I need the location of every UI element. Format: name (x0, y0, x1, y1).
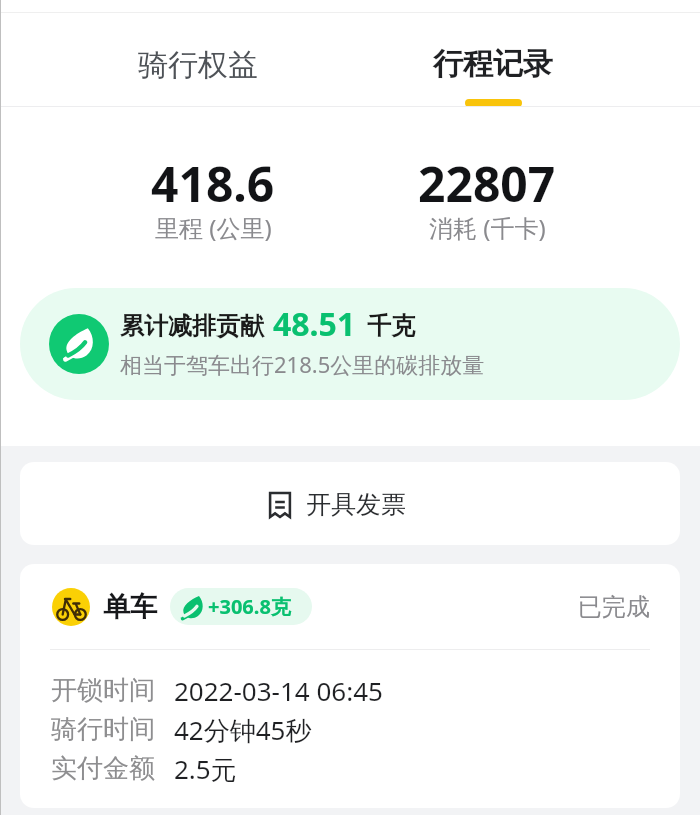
staticText: 单车 (103, 590, 157, 624)
staticText: 行程记录 (433, 45, 553, 83)
button[interactable]: 418.6 (76, 151, 350, 249)
staticText: 累计减排贡献 (120, 311, 264, 341)
staticText: 骑行时间 (51, 713, 155, 746)
button[interactable]: 行程记录 (345, 0, 640, 107)
staticText: 消耗 (千卡) (429, 211, 546, 244)
button[interactable]: 骑行权益 (50, 0, 345, 107)
staticText: 已完成 (578, 592, 650, 622)
staticText: 22807 (418, 151, 556, 216)
staticText: 里程 (公里) (155, 211, 272, 244)
staticText: 418.6 (151, 151, 275, 216)
staticText: 2.5元 (174, 751, 237, 785)
button[interactable]: 22807 (350, 151, 624, 249)
staticText: 千克 (367, 311, 415, 341)
staticText: 42分钟45秒 (174, 712, 312, 746)
button[interactable]: 单车 (20, 564, 680, 808)
staticText: +306.8克 (208, 593, 291, 620)
staticText: 开具发票 (306, 489, 406, 520)
staticText: 实付金额 (51, 752, 155, 785)
staticText: 开锁时间 (51, 674, 155, 707)
button[interactable]: 累计减排贡献 (20, 288, 680, 400)
staticText: 骑行权益 (138, 46, 258, 84)
staticText: 相当于驾车出行218.5公里的碳排放量 (120, 349, 485, 379)
other: 单车 (52, 588, 90, 626)
button[interactable]: 开具发票 (20, 462, 680, 545)
staticText: 48.51 (273, 302, 356, 346)
staticText: 2022-03-14 06:45 (174, 673, 383, 707)
